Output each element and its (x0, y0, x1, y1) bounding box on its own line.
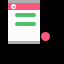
button[interactable] (15, 13, 36, 17)
button[interactable]: Add (41, 32, 50, 41)
button[interactable] (15, 22, 36, 26)
